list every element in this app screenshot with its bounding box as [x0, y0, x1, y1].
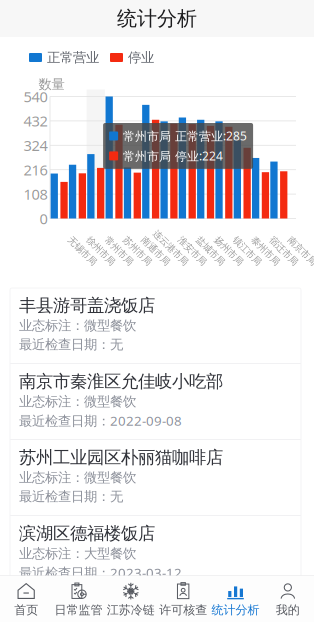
staticText: 泰州市局 — [251, 237, 287, 248]
button[interactable]: 首页 — [0, 576, 52, 622]
staticText: 南通市局 — [141, 237, 177, 248]
staticText: 我的 — [276, 603, 300, 617]
button[interactable]: 日常监管 — [52, 576, 105, 622]
staticText: 许可核查 — [159, 603, 207, 617]
staticText: 江苏冷链 — [107, 603, 155, 617]
staticText: 连云港市局 — [150, 237, 195, 248]
staticText: 最近检查日期：无 — [19, 336, 123, 353]
staticText: 镇江市局 — [233, 237, 269, 248]
staticText: 0 — [39, 209, 47, 228]
button[interactable]: 南京市秦淮区允佳岐小吃部 — [10, 364, 301, 440]
staticText: 最近检查日期：无 — [19, 488, 123, 505]
staticText: 业态标注：大型餐饮 — [19, 545, 136, 562]
staticText: 丰县游哥盖浇饭店 — [19, 295, 155, 316]
staticText: 苏州市局 — [123, 237, 159, 248]
staticText: 正常营业 — [47, 49, 99, 66]
staticText: 滨湖区德福楼饭店 — [19, 523, 155, 544]
staticText: 徐州市局 — [86, 237, 122, 248]
staticText: 最近检查日期：2022-09-08 — [19, 412, 182, 429]
staticText: 数量 — [38, 76, 64, 92]
staticText: 432 — [23, 111, 47, 131]
staticText: 南京市局 — [287, 237, 314, 248]
staticText: 南京市秦淮区允佳岐小吃部 — [19, 371, 223, 392]
staticText: 业态标注：微型餐饮 — [19, 317, 136, 334]
staticText: 540 — [23, 87, 47, 106]
staticText: 常州市局 — [104, 237, 140, 248]
staticText: 淮安市局 — [178, 237, 214, 248]
button[interactable]: 江苏冷链 — [105, 576, 157, 622]
staticText: 无锡市局 — [68, 237, 104, 248]
staticText: 业态标注：微型餐饮 — [19, 469, 136, 486]
staticText: 扬州市局 — [214, 237, 250, 248]
staticText: 宿迁市局 — [269, 237, 305, 248]
button[interactable]: 滨湖区德福楼饭店 — [10, 516, 301, 591]
staticText: 常州市局 停业:224 — [123, 148, 223, 164]
button[interactable]: 苏州工业园区朴丽猫咖啡店 — [10, 440, 301, 516]
staticText: 统计分析 — [117, 6, 197, 31]
staticText: 首页 — [14, 603, 38, 617]
button[interactable]: 丰县游哥盖浇饭店 — [10, 288, 301, 364]
staticText: 苏州工业园区朴丽猫咖啡店 — [19, 447, 223, 468]
button[interactable]: 许可核查 — [157, 576, 209, 622]
staticText: 常州市局 正常营业:285 — [123, 128, 247, 144]
staticText: 108 — [23, 184, 47, 204]
staticText: 日常监管 — [54, 603, 102, 617]
staticText: 最近检查日期：2023-03-12 — [19, 564, 182, 581]
staticText: 216 — [23, 160, 47, 179]
button[interactable]: 统计分析 — [209, 576, 262, 622]
staticText: 盐城市局 — [196, 237, 232, 248]
staticText: 324 — [23, 136, 47, 155]
staticText: 停业 — [128, 49, 154, 66]
staticText: 统计分析 — [211, 603, 259, 617]
staticText: 业态标注：微型餐饮 — [19, 393, 136, 410]
button[interactable]: 我的 — [262, 576, 314, 622]
